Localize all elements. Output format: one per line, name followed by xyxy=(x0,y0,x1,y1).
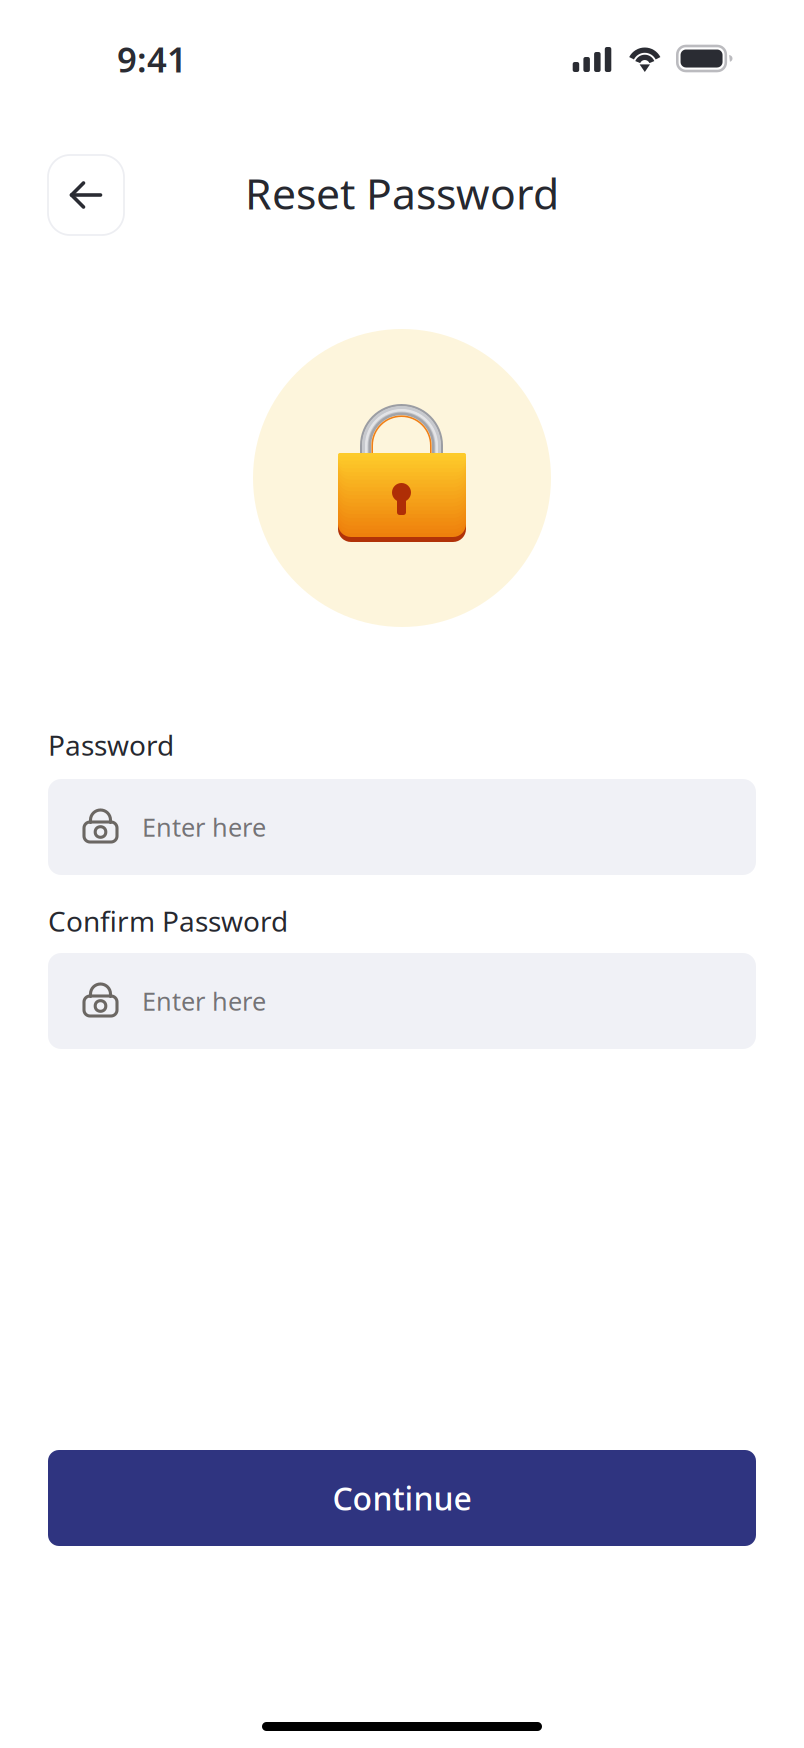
staticText: Confirm Password xyxy=(48,902,288,940)
button[interactable]: Enter here xyxy=(48,779,756,875)
staticText: Continue xyxy=(332,1477,471,1519)
staticText: 9:41 xyxy=(117,36,187,82)
button[interactable]: Enter here xyxy=(48,953,756,1049)
staticText: Password xyxy=(48,726,174,764)
staticText: Enter here xyxy=(142,984,266,1018)
staticText: Reset Password xyxy=(245,165,559,221)
staticText: Enter here xyxy=(142,810,266,844)
button[interactable]: Back xyxy=(48,155,124,235)
button[interactable]: Continue xyxy=(48,1450,756,1546)
